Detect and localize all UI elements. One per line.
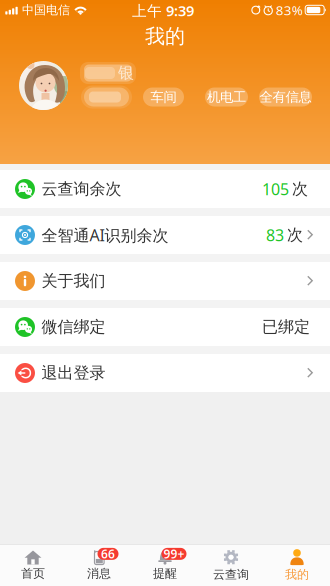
staticText: 次 <box>287 225 303 245</box>
staticText: 上午 9:39 <box>132 1 194 20</box>
staticText: 我的 <box>145 24 185 49</box>
button[interactable]: 云查询余次 <box>0 170 330 208</box>
button[interactable]: 提醒 <box>132 544 198 586</box>
button[interactable]: 全智通AI识别余次 <box>0 216 330 254</box>
staticText: 99+ <box>163 546 184 562</box>
button[interactable]: 微信绑定 <box>0 308 330 346</box>
staticText: 云查询 <box>213 567 249 582</box>
staticText: 次 <box>292 179 308 199</box>
staticText: 我的 <box>285 567 309 582</box>
staticText: 83 <box>266 224 284 246</box>
staticText: 消息 <box>87 566 111 581</box>
staticText: 83% <box>276 1 303 19</box>
staticText: 提醒 <box>153 566 177 581</box>
staticText: 微信绑定 <box>41 317 105 337</box>
staticText: 车间 <box>150 89 176 105</box>
button[interactable]: 首页 <box>0 544 66 586</box>
button[interactable]: 机电工 <box>205 87 248 106</box>
staticText: 全智通AI识别余次 <box>41 224 168 246</box>
button[interactable]: 云查询 <box>198 544 264 586</box>
staticText: 机电工 <box>207 89 246 105</box>
staticText: 105 <box>262 178 289 200</box>
button[interactable]: 车间 <box>143 87 184 106</box>
staticText: 云查询余次 <box>41 179 121 199</box>
staticText: 中国电信 <box>22 3 70 17</box>
button[interactable]: 关于我们 <box>0 262 330 300</box>
button[interactable]: 我的 <box>264 544 330 586</box>
button[interactable]: 退出登录 <box>0 354 330 392</box>
staticText: 首页 <box>21 566 45 581</box>
staticText: 已绑定 <box>262 317 310 337</box>
staticText: 银 <box>118 63 134 83</box>
staticText: 66 <box>101 546 115 562</box>
staticText: 关于我们 <box>41 271 105 291</box>
button[interactable]: 全有信息 <box>259 87 312 106</box>
staticText: 全有信息 <box>259 89 311 105</box>
staticText: 退出登录 <box>41 363 105 383</box>
button[interactable]: 消息 <box>66 544 132 586</box>
